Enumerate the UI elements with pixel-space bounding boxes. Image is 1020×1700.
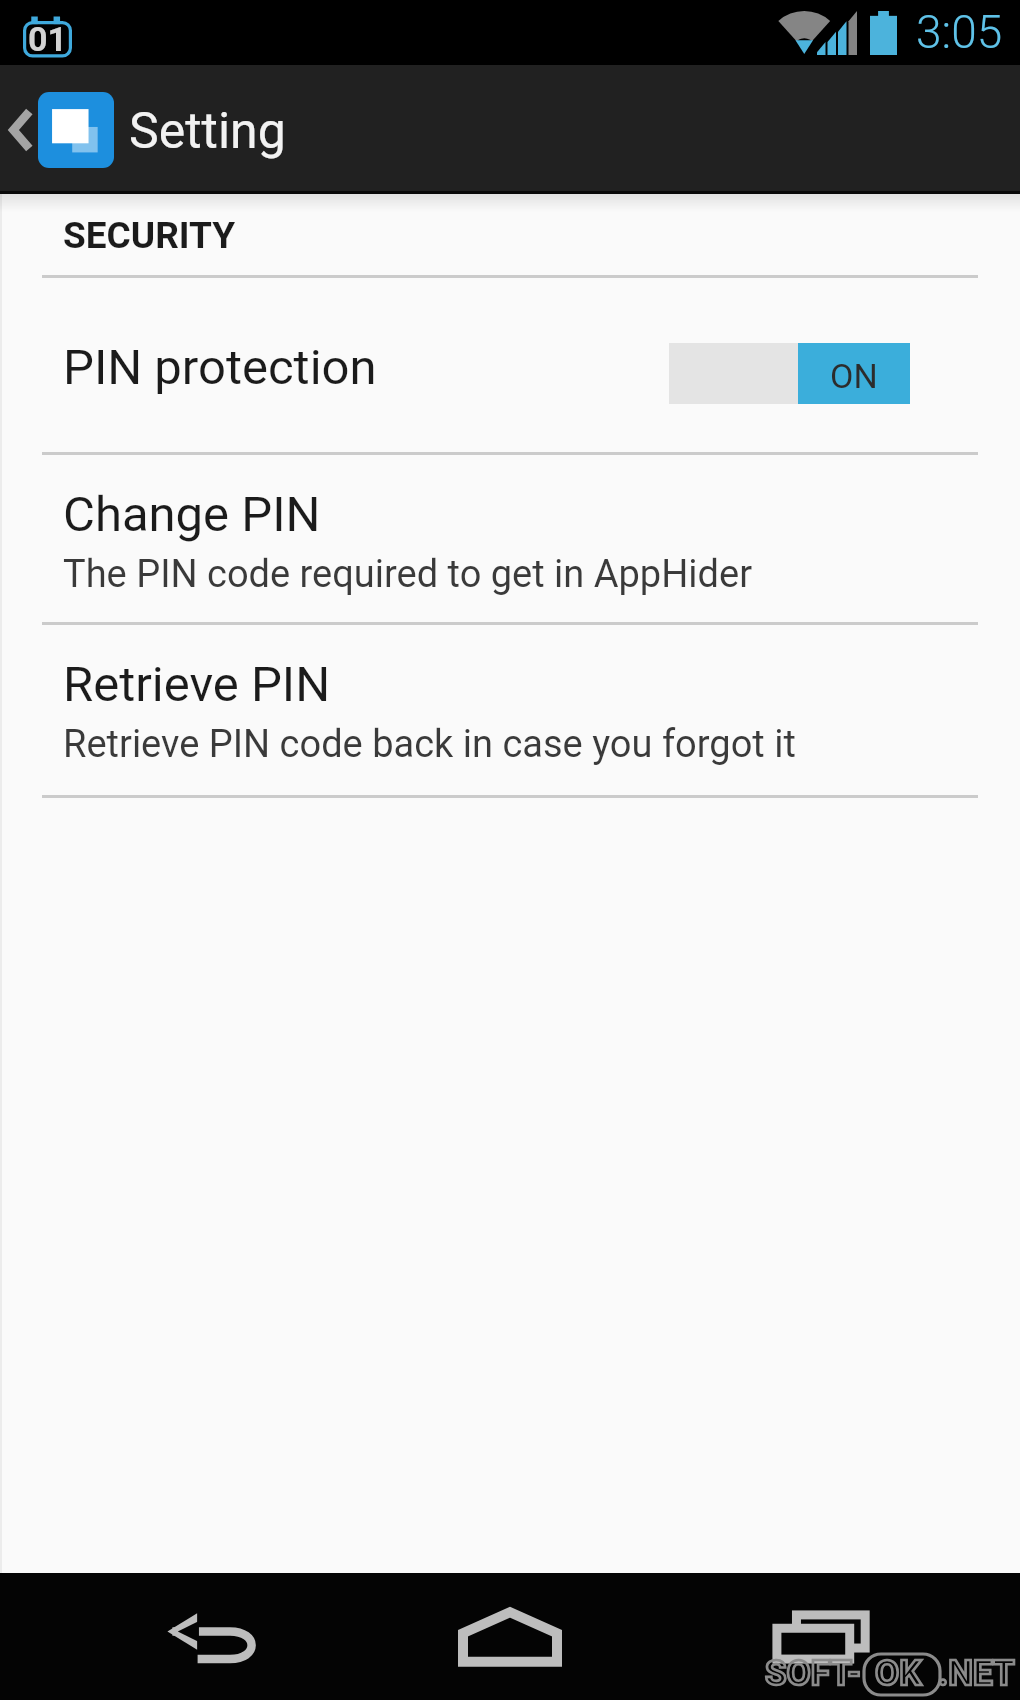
button[interactable]: Home bbox=[340, 1573, 680, 1700]
staticText: PIN protection bbox=[63, 339, 377, 396]
staticText: The PIN code required to get in AppHider bbox=[63, 552, 753, 597]
button[interactable]: Back bbox=[0, 1573, 340, 1700]
button[interactable]: Retrieve PIN bbox=[0, 625, 1020, 798]
button[interactable]: Change PIN bbox=[0, 455, 1020, 625]
button[interactable]: PIN protection switch, on bbox=[669, 343, 910, 404]
staticText: SECURITY bbox=[63, 214, 236, 257]
button[interactable]: Navigate up bbox=[0, 65, 1020, 194]
staticText: Change PIN bbox=[63, 486, 321, 543]
staticText: Retrieve PIN code back in case you forgo… bbox=[63, 722, 796, 767]
button[interactable]: Recent apps bbox=[680, 1573, 1020, 1700]
button[interactable]: PIN protection bbox=[0, 278, 1020, 455]
staticText: ON bbox=[830, 356, 878, 396]
staticText: 3:05 bbox=[916, 5, 1003, 59]
staticText: .NET bbox=[938, 1653, 1015, 1694]
staticText: SOFT- bbox=[765, 1653, 861, 1694]
staticText: 01 bbox=[28, 19, 68, 59]
staticText: Setting bbox=[129, 102, 286, 161]
staticText: OK bbox=[875, 1653, 922, 1694]
staticText: Retrieve PIN bbox=[63, 656, 331, 713]
